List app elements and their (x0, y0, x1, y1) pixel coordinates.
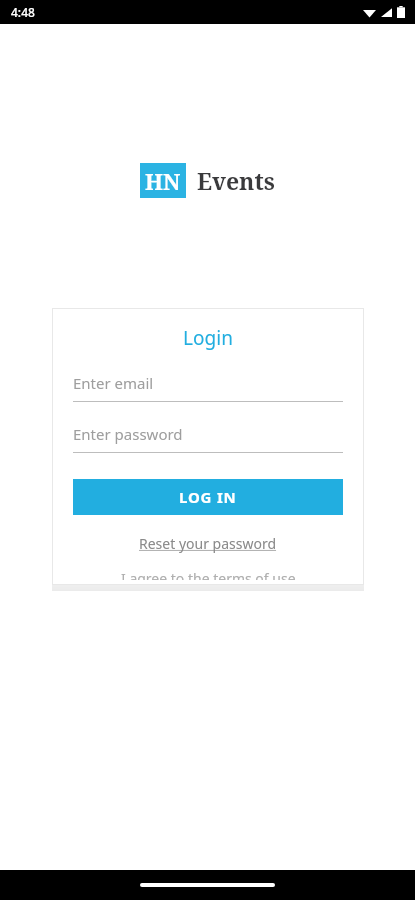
staticText: Login (52, 325, 364, 351)
other: Home gesture bar (140, 883, 275, 887)
staticText: Reset your password (139, 534, 277, 553)
staticText: Enter email (73, 373, 154, 393)
staticText: HN (145, 166, 181, 196)
button[interactable]: LOG IN (73, 479, 343, 515)
button[interactable]: Enter password (73, 424, 343, 453)
staticText: I agree to the terms of use (121, 569, 296, 580)
button[interactable]: I agree to the terms of use (52, 564, 364, 585)
button[interactable]: Enter email (73, 373, 343, 402)
button[interactable]: Reset your password (52, 529, 364, 558)
staticText: Events (197, 165, 275, 196)
staticText: 4:48 (11, 4, 35, 20)
staticText: LOG IN (179, 487, 237, 507)
staticText: Enter password (73, 424, 183, 444)
